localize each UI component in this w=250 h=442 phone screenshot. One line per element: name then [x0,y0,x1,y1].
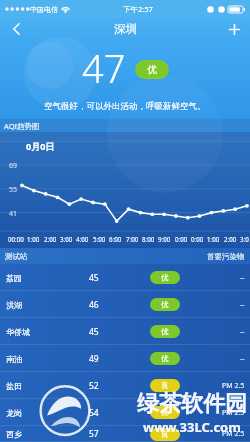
staticText: 6:00 [109,235,122,243]
staticText: 55 [9,185,18,195]
staticText: 3:0 [240,235,249,243]
staticText: 下午2:57 [123,4,153,14]
staticText: 龙岗 [6,408,22,418]
staticText: 优 [161,300,169,309]
staticText: 优 [161,273,169,282]
staticText: 41 [9,209,18,219]
staticText: PM 2.5 [222,408,245,418]
staticText: 2:00 [224,235,237,243]
button[interactable]: Add city [218,18,250,40]
staticText: 00:00 [8,235,24,243]
staticText: 南油 [6,354,22,364]
staticText: PM 2.5 [222,381,245,391]
staticText: 洪湖 [6,300,22,310]
staticText: 绿茶软件园 [137,390,247,418]
button[interactable]: Back [0,18,32,40]
staticText: -- [240,300,245,310]
button[interactable]: 南油 [0,345,250,372]
staticText: 52 [89,380,99,392]
staticText: 0月0日 [26,140,55,152]
staticText: 优 [161,354,169,363]
staticText: 良 [161,430,169,439]
staticText: 空气很好，可以外出活动，呼吸新鲜空气。 [44,101,206,112]
button[interactable]: 西乡 [0,426,250,442]
staticText: www.33LC.com [143,418,241,436]
staticText: 良 [161,408,169,417]
button[interactable]: 荔园 [0,264,250,291]
staticText: -- [240,354,245,364]
staticText: 1:00 [207,235,220,243]
button[interactable]: 盐田 [0,372,250,399]
staticText: 8:00 [142,235,155,243]
staticText: 54 [89,407,99,419]
staticText: 49 [89,353,99,365]
button[interactable]: 优 [135,60,169,79]
staticText: 首要污染物 [207,252,245,261]
staticText: 4:00 [76,235,89,243]
staticText: 45 [89,326,99,338]
staticText: 57 [89,428,99,440]
staticText: 47 [82,42,126,94]
staticText: 盐田 [6,381,22,391]
staticText: 深圳 [114,22,137,36]
button[interactable]: 华侨城 [0,318,250,345]
staticText: -- [240,273,245,283]
staticText: 华侨城 [6,327,30,337]
staticText: 45 [89,272,99,284]
staticText: 69 [9,161,18,171]
staticText: 9:00 [158,235,171,243]
staticText: 良 [161,381,169,390]
staticText: 测试站 [5,252,28,261]
staticText: 3:00 [60,235,73,243]
staticText: 2:00 [44,235,57,243]
staticText: 0:00 [175,235,188,243]
staticText: 1:00 [27,235,40,243]
staticText: 0:00 [191,235,204,243]
button[interactable]: 龙岗 [0,399,250,426]
staticText: 7:00 [126,235,139,243]
staticText: PM 2.5 [222,429,245,439]
staticText: 46 [89,299,99,311]
staticText: AQI趋势图 [4,121,40,131]
staticText: 荔园 [6,273,22,283]
staticText: 5:00 [93,235,106,243]
staticText: -- [240,327,245,337]
staticText: 西乡 [6,429,22,439]
staticText: 中国电信 [30,5,58,14]
button[interactable]: 洪湖 [0,291,250,318]
staticText: 优 [147,63,157,76]
staticText: 优 [161,327,169,336]
